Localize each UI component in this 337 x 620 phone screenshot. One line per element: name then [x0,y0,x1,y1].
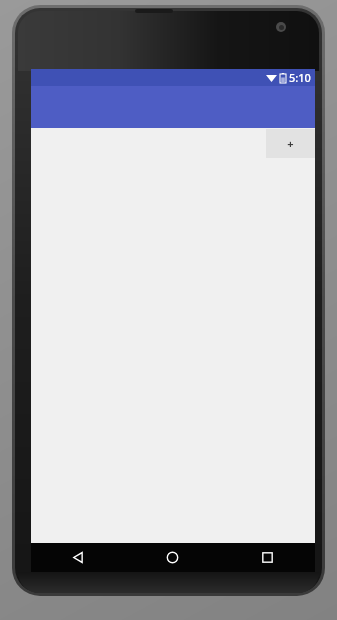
button[interactable]: Home [125,543,220,572]
button[interactable]: Recent apps [220,543,315,572]
staticText: + [287,136,294,151]
button[interactable]: Back [31,543,125,572]
staticText: 5:10 [289,70,311,85]
button[interactable]: + [266,129,315,158]
